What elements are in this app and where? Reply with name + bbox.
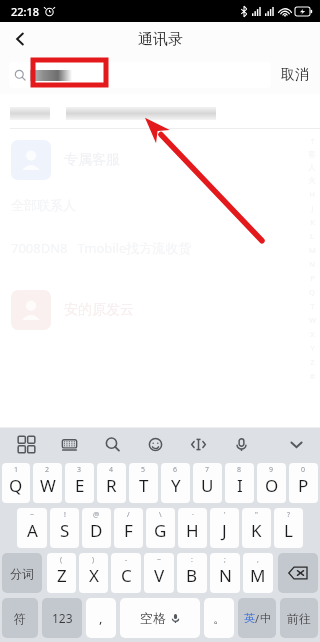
button[interactable]: 前往 [280,598,318,638]
staticText: 123 [52,610,73,626]
button[interactable]: 5 [129,463,158,503]
staticText: / [255,611,260,626]
button[interactable]: " [242,508,271,548]
staticText: L [310,231,314,241]
staticText: 空格 [140,610,166,626]
staticText: W [40,474,56,497]
button[interactable]: ~ [17,508,47,548]
staticText: 英 [244,611,255,625]
staticText: 0 [301,465,306,475]
staticText: 5 [141,465,146,475]
button[interactable]: 6 [161,463,190,503]
button[interactable]: Backspace [278,553,318,593]
staticText: : [191,555,193,565]
staticText: G [154,519,167,542]
button[interactable]: 空格 [120,598,200,638]
staticText: 前往 [287,611,311,626]
staticText: 2 [45,465,50,475]
staticText: N [309,259,315,269]
button[interactable]: 安的原发云 [11,287,320,333]
staticText: " [255,510,258,520]
staticText: ! [64,510,66,520]
button[interactable]: , [86,598,116,638]
button[interactable]: 分词 [2,553,42,593]
staticText: ~ [157,555,162,565]
button[interactable]: , [243,553,273,593]
button[interactable]: ? [274,508,303,548]
button[interactable] [9,62,271,88]
staticText: H [309,189,315,199]
button[interactable]: 4 [97,463,126,503]
staticText: \ [159,510,162,520]
button[interactable]: ! [50,508,79,548]
staticText: 中 [260,611,271,625]
staticText: 22:18 [11,4,40,19]
staticText: , [99,609,103,627]
button[interactable]: 1 [2,463,30,503]
staticText: Y [171,474,181,497]
button[interactable]: - [111,553,141,593]
button[interactable]: @ [82,508,111,548]
staticText: E [75,474,85,497]
button[interactable]: 专属客服 [11,137,320,183]
staticText: 6 [173,465,178,475]
button[interactable]: 。 [204,598,234,638]
staticText: 分词 [10,566,34,581]
staticText: Q [9,474,23,497]
button[interactable]: Emoji [143,432,167,456]
button[interactable]: 取消 [279,62,311,88]
staticText: M [250,564,266,587]
button[interactable]: 符 [2,598,38,638]
staticText: 。 [213,610,226,626]
button[interactable]: 0 [289,463,318,503]
button[interactable]: 2 [33,463,62,503]
staticText: / [127,510,130,520]
staticText: Y [310,343,315,353]
button[interactable]: 123 [42,598,82,638]
staticText: 人 [308,163,316,172]
staticText: I [237,474,243,497]
staticText: O [265,474,279,497]
staticText: R [106,474,117,497]
button[interactable]: 9 [257,463,286,503]
button[interactable]: Voice input [229,432,253,456]
staticText: Q [309,287,315,297]
button[interactable]: Keyboard layouts [14,432,38,456]
staticText: U [201,474,214,497]
button[interactable]: · [178,508,207,548]
staticText: T [139,474,149,497]
staticText: 通讯录 [138,30,183,49]
button[interactable]: ~ [144,553,174,593]
button[interactable]: Search [100,432,124,456]
button[interactable]: : [177,553,207,593]
staticText: 取消 [281,66,309,84]
staticText: L [284,519,293,542]
button[interactable]: 英 [238,598,276,638]
staticText: B [186,564,198,587]
staticText: # [310,371,315,381]
button[interactable]: Keyboard [57,432,81,456]
button[interactable]: ; [210,553,240,593]
staticText: ? [287,510,291,520]
button[interactable]: 8 [225,463,254,503]
button[interactable]: 3 [65,463,94,503]
staticText: 火 [308,176,316,185]
button[interactable]: ( [47,553,76,593]
staticText: J [311,203,314,213]
button[interactable]: Text editing [186,432,210,456]
button[interactable]: ' [210,508,239,548]
staticText: K [251,519,262,542]
staticText: H [186,519,199,542]
staticText: 1 [14,465,19,475]
staticText: Z [310,357,315,367]
button[interactable]: 7 [193,463,222,503]
staticText: T [310,301,315,311]
staticText: @ [93,510,100,520]
button[interactable]: ) [79,553,108,593]
button[interactable]: \ [146,508,175,548]
staticText: S [60,519,70,542]
button[interactable]: Hide keyboard [284,432,308,456]
staticText: 专属客服 [64,151,120,169]
button[interactable]: Back [0,22,40,56]
button[interactable]: / [114,508,143,548]
